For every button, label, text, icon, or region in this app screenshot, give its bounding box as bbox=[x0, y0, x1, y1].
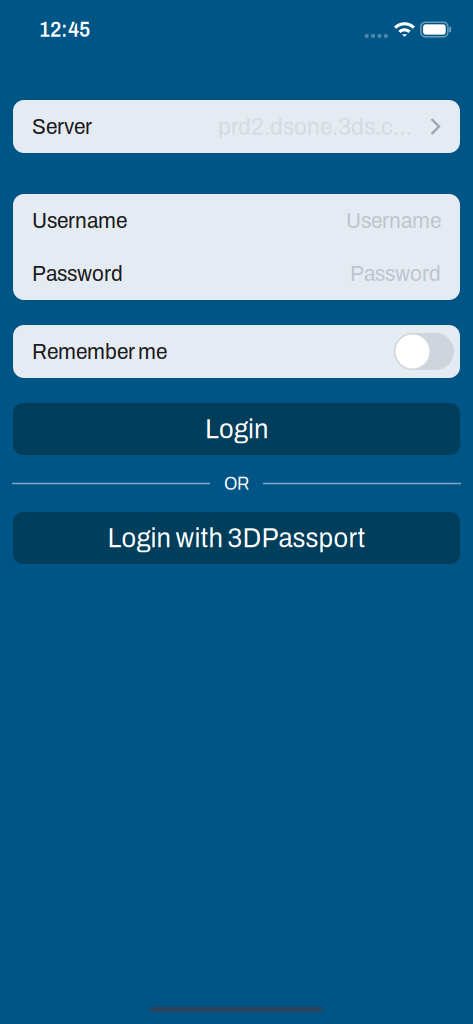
staticText: Login bbox=[205, 414, 268, 444]
staticText: Password bbox=[350, 261, 441, 286]
staticText: Remember me bbox=[32, 339, 167, 364]
staticText: Username bbox=[346, 208, 441, 233]
button[interactable]: Login bbox=[13, 403, 460, 455]
button[interactable]: Login with 3DPassport bbox=[13, 512, 460, 564]
button[interactable]: Server bbox=[13, 100, 460, 153]
staticText: Username bbox=[32, 208, 127, 233]
staticText: Password bbox=[32, 261, 123, 286]
staticText: Server bbox=[32, 114, 92, 139]
button[interactable]: Remember me bbox=[13, 325, 460, 378]
staticText: OR bbox=[224, 473, 249, 494]
staticText: 12:45 bbox=[39, 18, 90, 41]
staticText: Login with 3DPassport bbox=[107, 523, 365, 553]
staticText: prd2.dsone.3ds.c… bbox=[218, 113, 412, 140]
